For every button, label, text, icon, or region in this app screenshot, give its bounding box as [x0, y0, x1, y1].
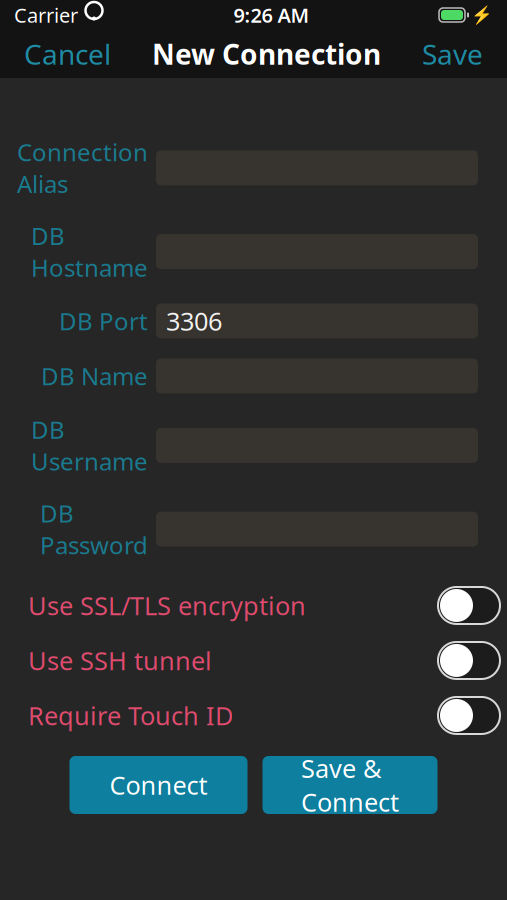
button[interactable]: Connect	[69, 756, 247, 814]
staticText: Save	[422, 35, 483, 73]
staticText: DB Port	[59, 305, 148, 337]
button[interactable]: Use SSH tunnel	[0, 633, 507, 688]
staticText: 3306	[166, 304, 222, 338]
button[interactable]: Save	[410, 27, 495, 81]
staticText: Carrier	[14, 2, 78, 28]
button[interactable]: Use SSL/TLS encryption	[0, 578, 507, 633]
staticText: Connect	[109, 768, 207, 802]
staticText: 9:26 AM	[233, 2, 309, 28]
staticText: Use SSH tunnel	[28, 644, 212, 677]
staticText: DB Username	[31, 413, 148, 477]
staticText: New Connection	[152, 35, 381, 73]
staticText: DB Password	[40, 497, 148, 561]
button[interactable]: Require Touch ID	[0, 688, 507, 743]
button[interactable]: Cancel	[12, 27, 123, 81]
staticText: Use SSL/TLS encryption	[28, 589, 306, 622]
staticText: Save & Connect	[301, 751, 399, 819]
staticText: Cancel	[24, 35, 111, 73]
staticText: Connection Alias	[17, 136, 148, 200]
staticText: DB Hostname	[31, 220, 148, 283]
button[interactable]: Save & Connect	[262, 756, 437, 814]
staticText: ⚡	[471, 5, 493, 25]
staticText: DB Name	[41, 360, 148, 392]
staticText: Require Touch ID	[28, 699, 233, 732]
